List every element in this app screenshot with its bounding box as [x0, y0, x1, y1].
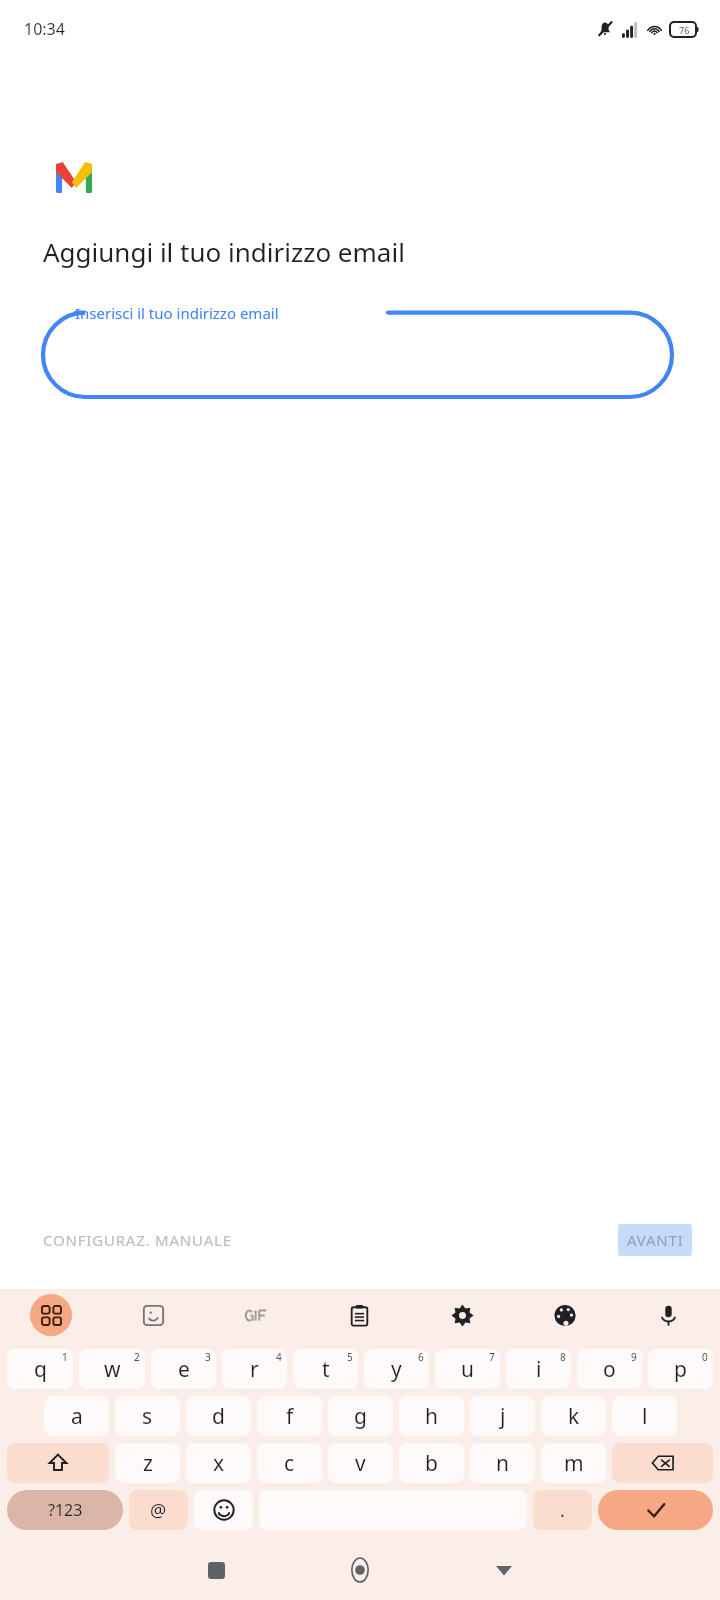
- button[interactable]: GIF: [205, 1293, 308, 1337]
- button[interactable]: y: [364, 1349, 429, 1389]
- staticText: CONFIGURAZ. MANUALE: [43, 1230, 232, 1250]
- button[interactable]: Home: [288, 1540, 432, 1600]
- button[interactable]: x: [186, 1443, 251, 1483]
- button[interactable]: p: [648, 1349, 713, 1389]
- button[interactable]: e: [151, 1349, 216, 1389]
- button[interactable]: r: [222, 1349, 287, 1389]
- button[interactable]: i: [506, 1349, 571, 1389]
- button[interactable]: Hide keyboard: [432, 1540, 576, 1600]
- button[interactable]: f: [257, 1396, 322, 1436]
- button[interactable]: Shift: [7, 1443, 109, 1483]
- staticText: .: [560, 1498, 565, 1523]
- staticText: 2: [134, 1350, 140, 1364]
- staticText: v: [355, 1449, 366, 1478]
- button[interactable]: Settings: [411, 1293, 514, 1337]
- staticText: i: [536, 1355, 542, 1384]
- staticText: 10:34: [24, 18, 65, 40]
- staticText: g: [354, 1402, 367, 1431]
- staticText: l: [642, 1402, 648, 1431]
- button[interactable]: n: [470, 1443, 535, 1483]
- staticText: 6: [418, 1350, 424, 1364]
- staticText: 1: [62, 1350, 68, 1364]
- staticText: o: [603, 1355, 616, 1384]
- staticText: p: [674, 1355, 687, 1384]
- button[interactable]: t: [293, 1349, 358, 1389]
- staticText: @: [150, 1498, 167, 1523]
- staticText: 0: [702, 1350, 708, 1364]
- button[interactable]: q: [7, 1349, 73, 1389]
- staticText: u: [461, 1355, 474, 1384]
- button[interactable]: @: [129, 1490, 188, 1530]
- button[interactable]: d: [186, 1396, 251, 1436]
- staticText: e: [178, 1355, 190, 1384]
- staticText: f: [286, 1402, 294, 1431]
- staticText: 8: [560, 1350, 566, 1364]
- staticText: Inserisci il tuo indirizzo email: [75, 303, 279, 323]
- staticText: s: [142, 1402, 153, 1431]
- button[interactable]: CONFIGURAZ. MANUALE: [0, 1220, 275, 1260]
- staticText: 5: [347, 1350, 353, 1364]
- staticText: 9: [631, 1350, 637, 1364]
- staticText: c: [284, 1449, 295, 1478]
- staticText: w: [104, 1355, 121, 1384]
- button[interactable]: AVANTI: [618, 1224, 692, 1256]
- button[interactable]: b: [399, 1443, 464, 1483]
- button[interactable]: u: [435, 1349, 500, 1389]
- staticText: 7: [489, 1350, 495, 1364]
- button[interactable]: Clipboard: [308, 1293, 411, 1337]
- button[interactable]: j: [470, 1396, 535, 1436]
- button[interactable]: Toolbar: [30, 1294, 72, 1336]
- staticText: d: [212, 1402, 225, 1431]
- button[interactable]: z: [115, 1443, 180, 1483]
- staticText: q: [34, 1355, 47, 1384]
- button[interactable]: w: [79, 1349, 145, 1389]
- button[interactable]: Backspace: [612, 1443, 713, 1483]
- staticText: Aggiungi il tuo indirizzo email: [43, 234, 405, 269]
- button[interactable]: k: [541, 1396, 606, 1436]
- button[interactable]: g: [328, 1396, 393, 1436]
- button[interactable]: o: [577, 1349, 642, 1389]
- button[interactable]: Enter: [598, 1490, 713, 1530]
- button[interactable]: v: [328, 1443, 393, 1483]
- staticText: AVANTI: [627, 1230, 684, 1250]
- button[interactable]: m: [541, 1443, 606, 1483]
- button[interactable]: h: [399, 1396, 464, 1436]
- button[interactable]: Recents: [144, 1540, 288, 1600]
- staticText: n: [496, 1449, 509, 1478]
- button[interactable]: c: [257, 1443, 322, 1483]
- staticText: k: [568, 1402, 580, 1431]
- staticText: y: [391, 1355, 402, 1384]
- staticText: a: [71, 1402, 83, 1431]
- button[interactable]: Sticker: [102, 1293, 205, 1337]
- button[interactable]: l: [612, 1396, 677, 1436]
- staticText: b: [425, 1449, 438, 1478]
- button[interactable]: Emoji: [194, 1490, 253, 1530]
- button[interactable]: s: [115, 1396, 180, 1436]
- button[interactable]: .: [533, 1490, 592, 1530]
- staticText: h: [425, 1402, 438, 1431]
- staticText: 76: [679, 24, 690, 36]
- staticText: j: [500, 1402, 506, 1431]
- button[interactable]: a: [44, 1396, 109, 1436]
- staticText: ?123: [48, 1499, 83, 1521]
- staticText: x: [213, 1449, 225, 1478]
- staticText: m: [564, 1449, 584, 1478]
- button[interactable]: ?123: [7, 1490, 123, 1530]
- button[interactable]: Theme: [514, 1293, 617, 1337]
- staticText: r: [250, 1355, 259, 1384]
- button[interactable]: [43, 295, 672, 405]
- staticText: 4: [276, 1350, 282, 1364]
- staticText: 3: [205, 1350, 211, 1364]
- button[interactable]: Voice input: [617, 1293, 720, 1337]
- staticText: z: [143, 1449, 153, 1478]
- staticText: t: [322, 1355, 330, 1384]
